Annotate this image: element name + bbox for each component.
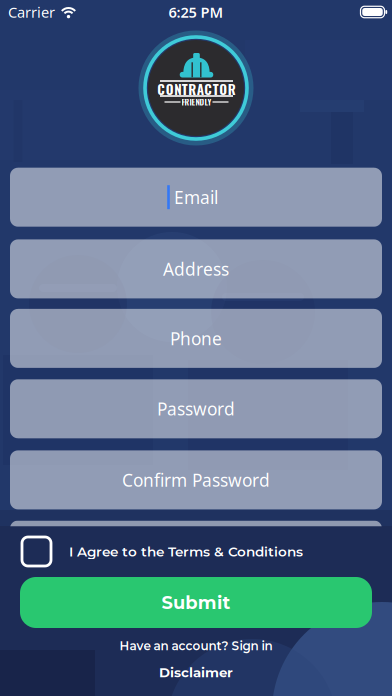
staticText: Password xyxy=(157,397,235,420)
staticText: Phone xyxy=(170,327,222,350)
button[interactable]: Address xyxy=(10,239,382,298)
staticText: Have an account? Sign in xyxy=(119,639,272,653)
button[interactable]: Have an account? Sign in xyxy=(119,639,272,653)
staticText: Confirm Password xyxy=(122,468,270,491)
button[interactable]: Referral xyxy=(10,520,382,526)
button[interactable]: Disclaimer xyxy=(159,664,233,681)
button[interactable]: Confirm Password xyxy=(10,450,382,509)
staticText: Submit xyxy=(161,592,230,613)
staticText: Disclaimer xyxy=(159,664,233,681)
button[interactable]: Phone xyxy=(10,309,382,368)
staticText: FRIENDLY xyxy=(181,96,211,108)
button[interactable]: Password xyxy=(10,379,382,438)
staticText: CONTRACTOR xyxy=(157,79,236,99)
staticText: I Agree to the Terms & Conditions xyxy=(69,543,303,560)
staticText: 6:25 PM xyxy=(168,2,223,22)
staticText: Carrier xyxy=(8,2,55,22)
button[interactable]: Submit xyxy=(20,577,372,628)
button[interactable]: Email xyxy=(10,168,382,227)
button[interactable]: I Agree to the Terms & Conditions xyxy=(0,534,392,568)
staticText: Email xyxy=(174,186,218,209)
staticText: Address xyxy=(163,257,229,280)
